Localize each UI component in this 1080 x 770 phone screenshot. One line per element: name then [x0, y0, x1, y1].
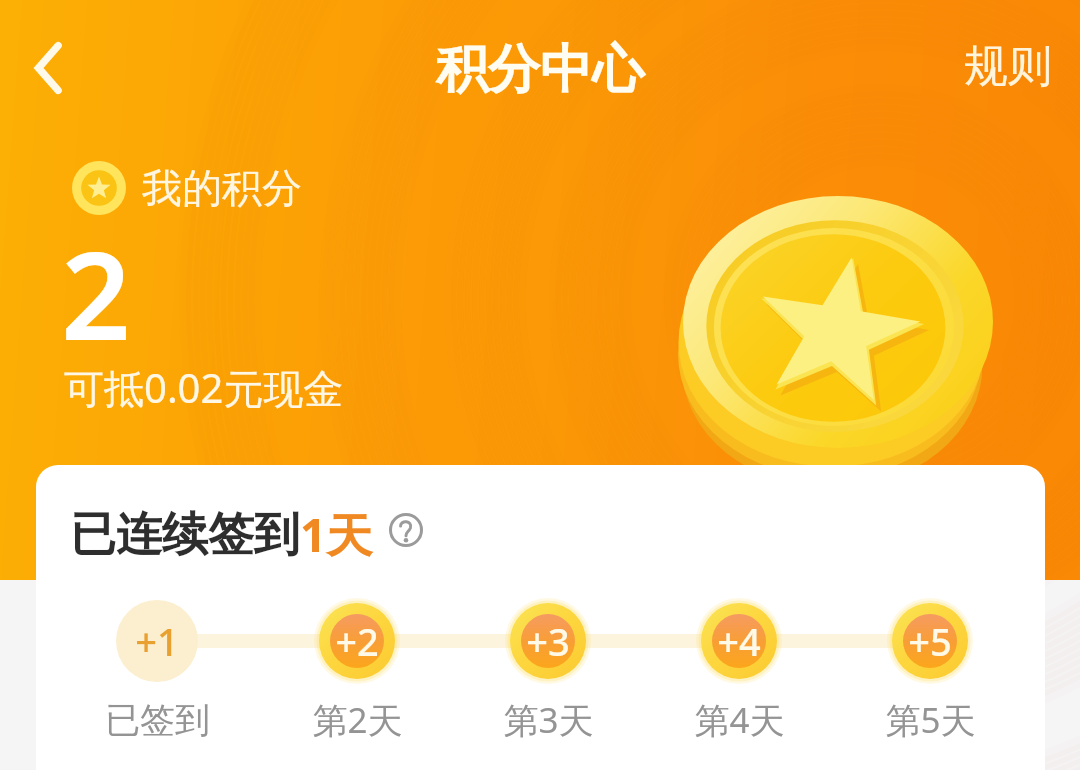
staticText: 已连续签到: [70, 506, 300, 564]
staticText: 第3天: [503, 696, 594, 744]
staticText: 我的积分: [142, 163, 302, 213]
button[interactable]: +3: [478, 605, 618, 677]
button[interactable]: Back: [0, 18, 99, 118]
button[interactable]: +5: [860, 605, 1000, 677]
button[interactable]: +1: [87, 605, 227, 677]
staticText: 积分中心: [436, 37, 644, 103]
staticText: 第5天: [885, 696, 976, 744]
staticText: +1: [135, 615, 179, 667]
button[interactable]: Help: [384, 508, 428, 552]
button[interactable]: +2: [287, 605, 427, 677]
staticText: 已签到: [105, 698, 210, 742]
staticText: +5: [908, 615, 952, 667]
staticText: +4: [717, 615, 761, 667]
staticText: +2: [335, 615, 379, 667]
staticText: 第4天: [694, 696, 785, 744]
staticText: 1天: [300, 503, 373, 566]
button[interactable]: 规则: [944, 24, 1072, 108]
button[interactable]: +4: [669, 605, 809, 677]
staticText: +3: [526, 615, 570, 667]
staticText: 可抵0.02元现金: [64, 360, 344, 415]
staticText: 2: [61, 210, 131, 376]
staticText: 规则: [964, 39, 1052, 94]
staticText: 第2天: [312, 696, 403, 744]
